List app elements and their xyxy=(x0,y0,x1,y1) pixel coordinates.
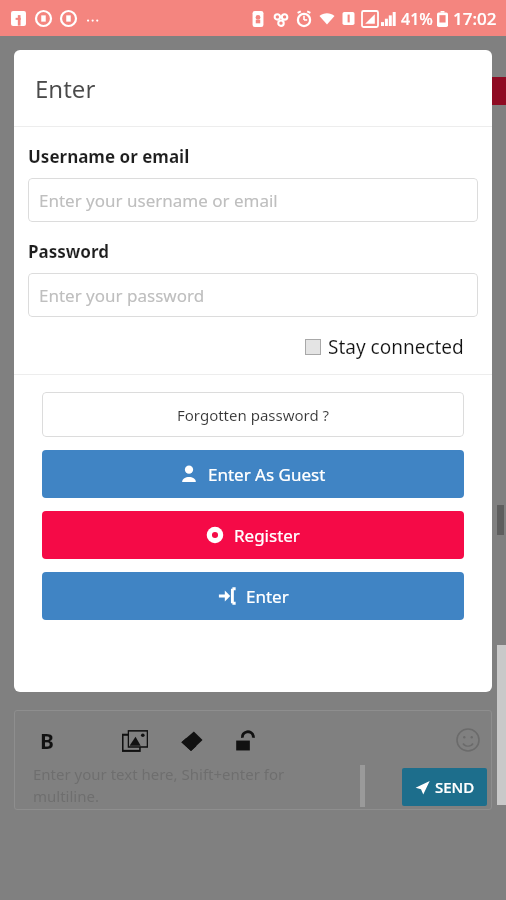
staticText: Enter your text here, Shift+enter for mu… xyxy=(33,764,333,807)
button[interactable]: Enter your password xyxy=(28,273,478,317)
staticText: 41% xyxy=(401,8,433,30)
button[interactable]: Stay connected xyxy=(28,334,478,360)
button[interactable]: Enter As Guest xyxy=(42,450,464,498)
staticText: Enter your username or email xyxy=(39,189,278,212)
button[interactable]: Insert image xyxy=(120,726,150,756)
staticText: Username or email xyxy=(28,145,190,168)
staticText: 17:02 xyxy=(453,7,497,30)
button[interactable]: Enter xyxy=(42,572,464,620)
staticText: Enter xyxy=(246,585,289,608)
button[interactable]: Forgotten password ? xyxy=(42,392,464,437)
staticText: Password xyxy=(28,240,109,263)
staticText: B xyxy=(40,727,54,756)
staticText: Stay connected xyxy=(328,334,464,360)
staticText: Enter xyxy=(35,72,96,105)
button[interactable]: Emoji xyxy=(452,724,484,756)
button[interactable]: Enter your username or email xyxy=(28,178,478,222)
staticText: Enter As Guest xyxy=(208,463,326,486)
staticText: SEND xyxy=(435,777,475,797)
staticText: Register xyxy=(234,524,300,547)
button[interactable]: Erase xyxy=(176,726,206,756)
button[interactable]: Bold xyxy=(32,726,62,756)
staticText: Enter your password xyxy=(39,284,205,307)
button[interactable]: Unlock xyxy=(230,726,260,756)
button[interactable]: SEND xyxy=(402,768,487,806)
button[interactable]: Register xyxy=(42,511,464,559)
staticText: Forgotten password ? xyxy=(177,405,330,425)
